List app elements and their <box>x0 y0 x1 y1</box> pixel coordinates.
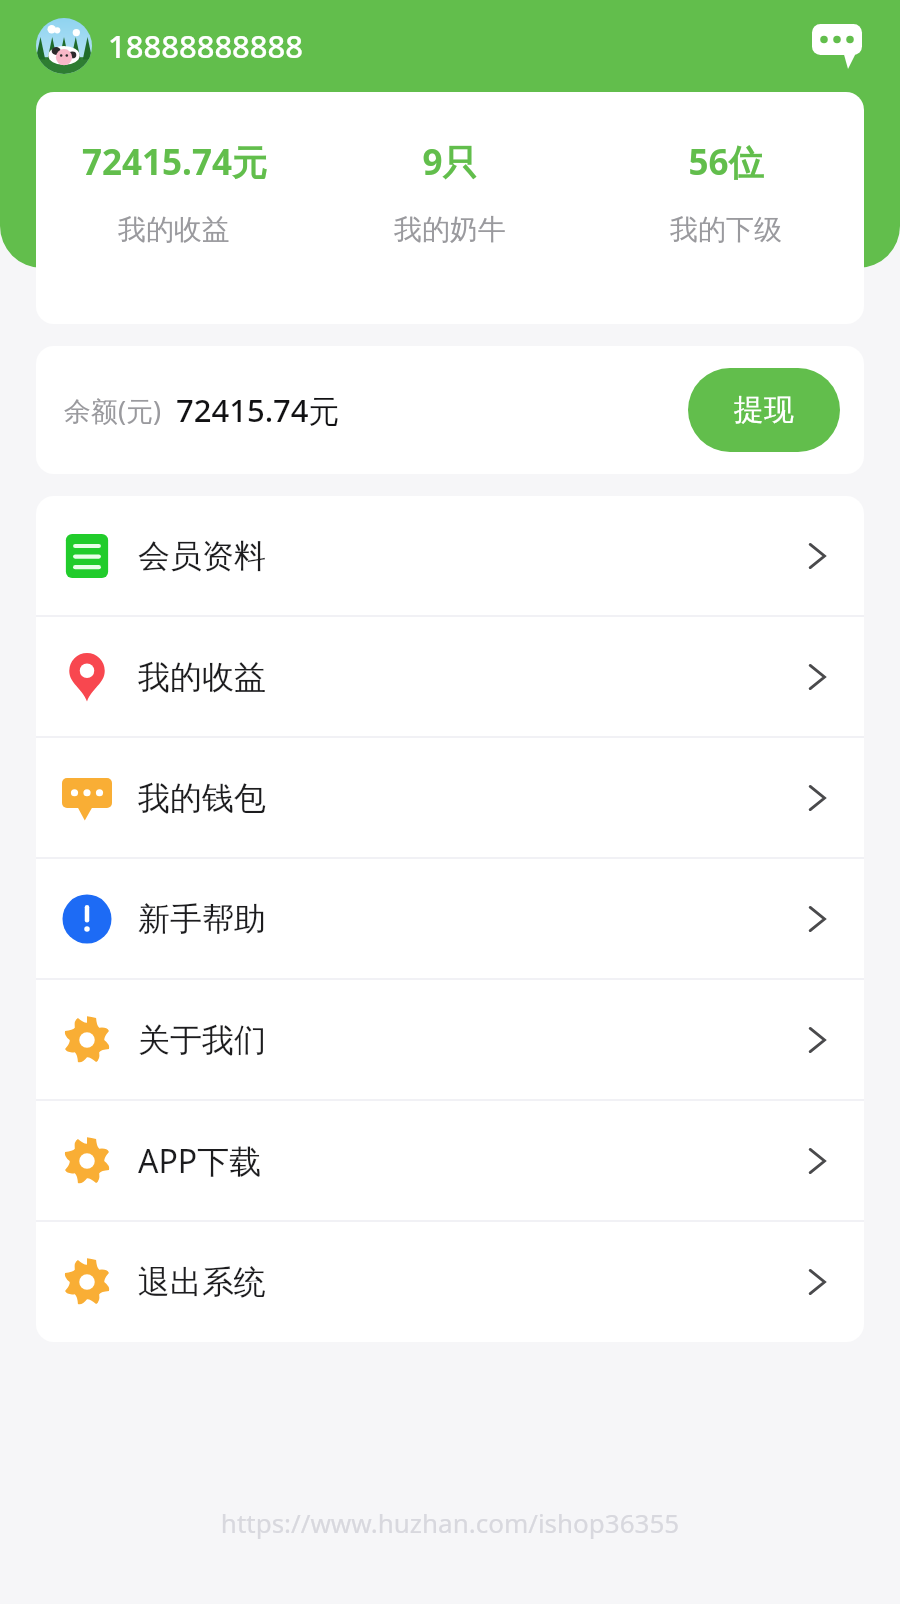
button[interactable]: 72415.74元 <box>36 138 312 247</box>
button[interactable]: 新手帮助 <box>36 859 864 980</box>
staticText: https://www.huzhan.com/ishop36355 <box>0 1505 900 1540</box>
staticText: 退出系统 <box>138 1262 266 1302</box>
staticText: 我的钱包 <box>138 778 266 818</box>
button[interactable]: APP下载 <box>36 1101 864 1222</box>
staticText: 72415.74元 <box>82 138 267 186</box>
button[interactable]: 提现 <box>688 368 840 452</box>
button[interactable]: 会员资料 <box>36 496 864 617</box>
staticText: 9只 <box>422 138 478 186</box>
staticText: 72415.74元 <box>176 389 340 431</box>
staticText: 关于我们 <box>138 1020 266 1060</box>
button[interactable]: Messages <box>810 19 864 73</box>
staticText: 会员资料 <box>138 536 266 576</box>
staticText: APP下载 <box>138 1139 262 1183</box>
staticText: 提现 <box>734 391 794 429</box>
staticText: 我的下级 <box>670 212 782 247</box>
button[interactable]: 我的钱包 <box>36 738 864 859</box>
button[interactable]: Profile avatar <box>36 18 92 74</box>
staticText: 余额(元) <box>64 392 162 429</box>
button[interactable]: 56位 <box>588 138 864 247</box>
staticText: 我的收益 <box>138 657 266 697</box>
button[interactable]: 关于我们 <box>36 980 864 1101</box>
staticText: 新手帮助 <box>138 899 266 939</box>
button[interactable]: 9只 <box>312 138 588 247</box>
button[interactable]: 退出系统 <box>36 1222 864 1342</box>
staticText: 我的收益 <box>118 212 230 247</box>
button[interactable]: 我的收益 <box>36 617 864 738</box>
staticText: 我的奶牛 <box>394 212 506 247</box>
staticText: 18888888888 <box>108 25 304 67</box>
staticText: 56位 <box>688 138 764 186</box>
